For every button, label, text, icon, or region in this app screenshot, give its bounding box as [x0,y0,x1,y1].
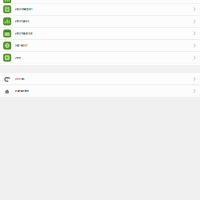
button[interactable]: Demo [0,52,200,64]
staticText: Over verlof [15,44,28,47]
staticText: Startscherm [15,89,29,93]
staticText: Verlofsaldo [15,20,30,23]
button[interactable]: Over verlof [0,40,200,51]
button[interactable]: Startscherm [0,85,200,97]
button[interactable]: Verlofkalender [0,28,200,39]
staticText: Contact [15,77,25,80]
staticText: Verlofkalender [15,32,33,35]
button[interactable]: Verlofoverzicht [0,3,200,15]
staticText: Demo [15,56,22,59]
button[interactable]: Contact [0,73,200,85]
button[interactable]: Verlofsaldo [0,16,200,27]
staticText: Verlofoverzicht [15,8,33,11]
